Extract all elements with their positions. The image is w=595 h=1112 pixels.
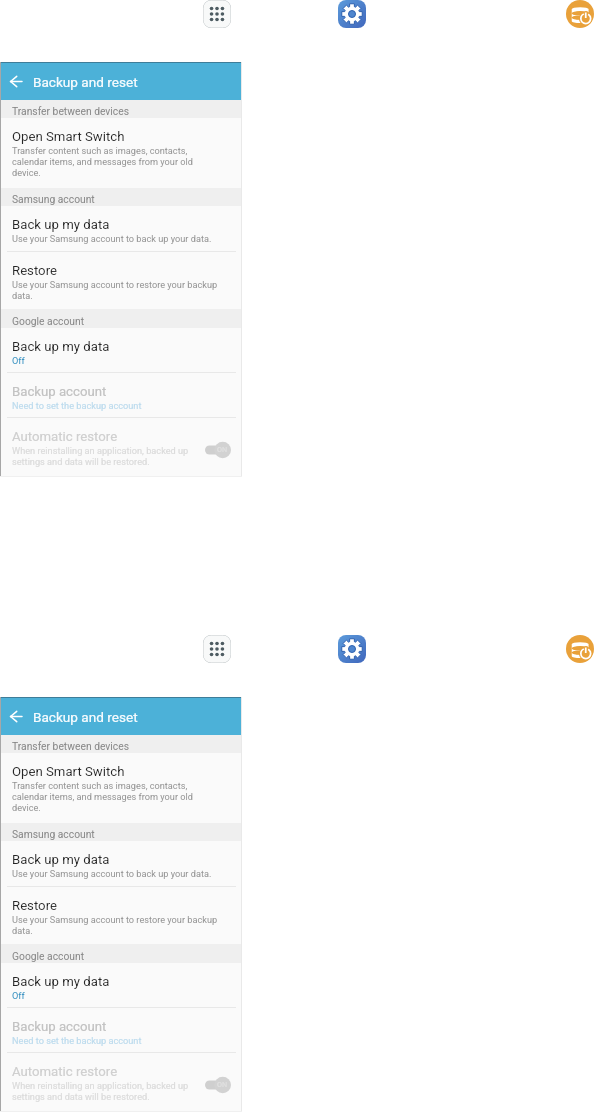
staticText: Restore [12, 263, 57, 278]
staticText: Automatic restore [12, 1064, 118, 1079]
button[interactable]: Apps [203, 0, 231, 28]
staticText: ON [217, 1080, 228, 1088]
button[interactable]: Backup and reset [566, 0, 594, 28]
staticText: Backup account [12, 1019, 107, 1034]
staticText: Restore [12, 898, 57, 913]
staticText: Google account [12, 315, 85, 327]
staticText: Need to set the backup account [12, 1035, 142, 1046]
button[interactable]: Back up my data [0, 328, 242, 373]
button[interactable]: Restore [0, 887, 242, 944]
staticText: Samsung account [12, 828, 95, 840]
staticText: Transfer between devices [12, 105, 129, 117]
button[interactable]: Back up my data [0, 841, 242, 887]
button[interactable]: Restore [0, 252, 242, 309]
staticText: Backup and reset [33, 74, 138, 90]
staticText: Back up my data [12, 852, 110, 867]
button[interactable]: Back [0, 698, 242, 735]
staticText: Back up my data [12, 217, 110, 232]
staticText: Open Smart Switch [12, 129, 125, 144]
button[interactable]: Back up my data [0, 206, 242, 252]
button[interactable]: Automatic restore [0, 1053, 242, 1111]
staticText: Open Smart Switch [12, 764, 125, 779]
staticText: Use your Samsung account to restore your… [12, 914, 218, 936]
staticText: Off [12, 355, 25, 366]
staticText: Use your Samsung account to back up your… [12, 233, 212, 244]
button[interactable]: Settings [338, 635, 366, 663]
staticText: When reinstalling an application, backed… [12, 1080, 189, 1102]
staticText: Automatic restore [12, 429, 118, 444]
button[interactable]: Backup account [0, 373, 242, 418]
staticText: Use your Samsung account to back up your… [12, 868, 212, 879]
button[interactable]: Back [0, 698, 33, 735]
button[interactable]: Back [0, 63, 33, 100]
staticText: Backup and reset [33, 709, 138, 725]
staticText: Transfer between devices [12, 740, 129, 752]
button[interactable]: Open Smart Switch [0, 753, 242, 823]
staticText: Back up my data [12, 974, 110, 989]
staticText: Google account [12, 950, 85, 962]
staticText: Backup account [12, 384, 107, 399]
staticText: Samsung account [12, 193, 95, 205]
staticText: Need to set the backup account [12, 400, 142, 411]
button[interactable]: Open Smart Switch [0, 118, 242, 188]
button[interactable]: Backup and reset [566, 635, 594, 663]
button[interactable]: Back up my data [0, 963, 242, 1008]
button[interactable]: Backup account [0, 1008, 242, 1053]
button[interactable]: Back [0, 63, 242, 100]
button[interactable]: Automatic restore [0, 418, 242, 476]
button[interactable]: Apps [203, 635, 231, 663]
button[interactable]: Settings [338, 0, 366, 28]
staticText: Off [12, 990, 25, 1001]
staticText: Transfer content such as images, contact… [12, 145, 193, 178]
staticText: Back up my data [12, 339, 110, 354]
staticText: Transfer content such as images, contact… [12, 780, 193, 813]
staticText: When reinstalling an application, backed… [12, 445, 189, 467]
staticText: Use your Samsung account to restore your… [12, 279, 218, 301]
staticText: ON [217, 445, 228, 453]
